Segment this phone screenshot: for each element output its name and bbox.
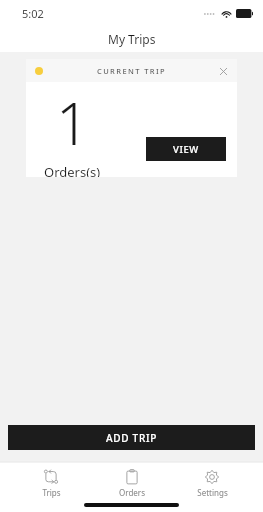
button[interactable]: Settings	[182, 467, 242, 500]
button[interactable]: Orders	[102, 467, 162, 500]
staticText: My Trips	[108, 31, 156, 47]
button[interactable]: Close	[215, 63, 231, 79]
staticText: CURRENT TRIP	[97, 66, 166, 76]
staticText: Orders	[119, 487, 145, 498]
staticText: 1	[56, 83, 90, 162]
staticText: Settings	[197, 487, 228, 498]
button[interactable]: VIEW	[146, 137, 226, 161]
staticText: Trips	[42, 487, 61, 498]
other: Settings	[204, 469, 220, 485]
button[interactable]: ADD TRIP	[8, 425, 255, 450]
other: Trips	[43, 469, 59, 485]
staticText: ADD TRIP	[106, 431, 157, 445]
button[interactable]: Trips	[21, 467, 81, 500]
other: Orders	[124, 469, 140, 485]
staticText: 5:02	[22, 6, 44, 21]
staticText: VIEW	[173, 143, 199, 156]
staticText: Orders(s)	[44, 163, 101, 177]
